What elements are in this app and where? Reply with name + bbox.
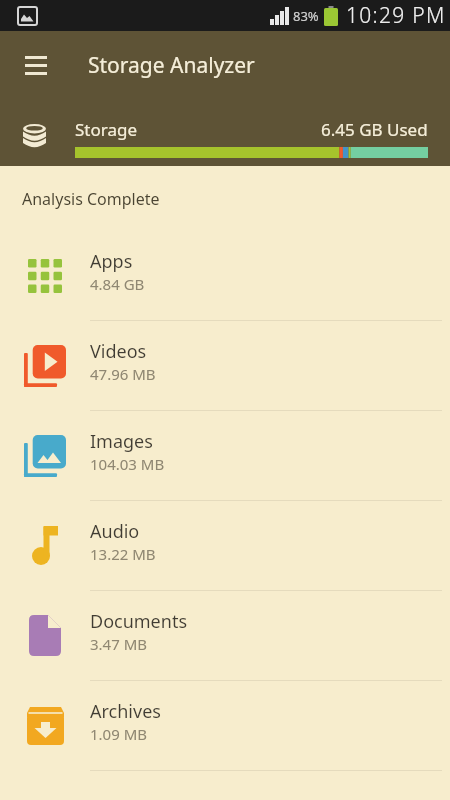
staticText: Images [90,429,153,454]
staticText: 1.09 MB [90,724,148,744]
button[interactable]: Archives [0,681,450,771]
staticText: Videos [90,339,147,364]
staticText: 83% [293,7,319,25]
button[interactable]: Apps [0,231,450,321]
staticText: 6.45 GB Used [321,118,428,141]
staticText: Archives [90,699,161,724]
staticText: Storage Analyzer [88,51,255,80]
staticText: 13.22 MB [90,544,156,564]
staticText: 3.47 MB [90,634,148,654]
button[interactable]: Videos [0,321,450,411]
staticText: 10:29 PM [346,1,446,30]
staticText: Storage [75,118,138,141]
staticText: Analysis Complete [22,188,160,210]
staticText: Documents [90,609,188,634]
button[interactable]: Audio [0,501,450,591]
staticText: Audio [90,519,140,544]
staticText: 4.84 GB [90,274,145,294]
button[interactable]: Storage [0,99,450,158]
staticText: Apps [90,249,133,274]
button[interactable]: Images [0,411,450,501]
staticText: 47.96 MB [90,364,156,384]
staticText: 104.03 MB [90,454,165,474]
button[interactable] [0,31,72,99]
button[interactable]: Documents [0,591,450,681]
